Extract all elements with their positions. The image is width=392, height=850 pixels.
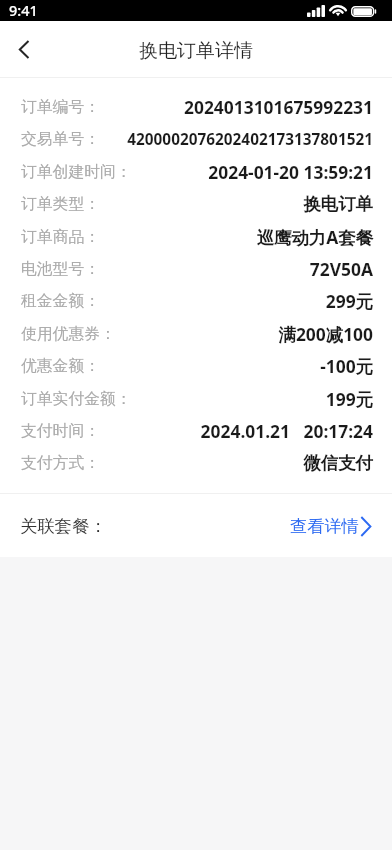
staticText: 72V50A [309, 257, 373, 281]
staticText: 电池型号： [21, 259, 100, 279]
staticText: 查看详情 [290, 515, 359, 537]
staticText: 2024-01-20 13:59:21 [208, 160, 373, 184]
staticText: 交易单号： [21, 129, 100, 149]
staticText: 4200002076202402173137801521 [127, 129, 373, 150]
staticText: 微信支付 [303, 452, 373, 474]
staticText: 199元 [325, 387, 373, 411]
staticText: 优惠金额： [21, 356, 100, 376]
staticText: 订单创建时间： [21, 162, 132, 182]
staticText: 2024.01.21 20:17:24 [200, 419, 373, 443]
staticText: 订单类型： [21, 194, 100, 214]
staticText: 巡鹰动力A套餐 [256, 225, 373, 249]
staticText: 租金金额： [21, 291, 100, 311]
staticText: 订单商品： [21, 227, 100, 247]
staticText: -100元 [320, 354, 373, 378]
staticText: 换电订单详情 [139, 39, 253, 63]
staticText: 换电订单 [303, 193, 373, 215]
staticText: 9:41 [9, 1, 38, 21]
staticText: 关联套餐： [20, 515, 107, 537]
staticText: 支付时间： [21, 421, 100, 441]
staticText: 订单编号： [21, 97, 100, 117]
staticText: 299元 [325, 289, 373, 313]
staticText: 使用优惠券： [21, 324, 116, 344]
staticText: 2024013101675992231 [183, 95, 373, 119]
button[interactable]: Back [0, 25, 48, 73]
button[interactable]: 关联套餐： [0, 494, 392, 557]
staticText: 满200减100 [278, 322, 373, 346]
staticText: 支付方式： [21, 453, 100, 473]
staticText: 订单实付金额： [21, 389, 132, 409]
button[interactable]: 查看详情 [290, 515, 371, 537]
